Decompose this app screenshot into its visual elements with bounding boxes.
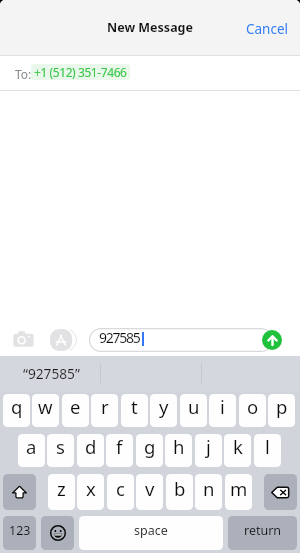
- staticText: o: [247, 394, 259, 419]
- button[interactable]: 123: [3, 516, 36, 550]
- button[interactable]: g: [136, 434, 163, 467]
- staticText: j: [206, 434, 211, 459]
- button[interactable]: w: [32, 394, 59, 427]
- button[interactable]: d: [77, 434, 104, 467]
- staticText: p: [276, 394, 288, 419]
- staticText: m: [230, 476, 248, 501]
- staticText: z: [57, 476, 66, 501]
- button[interactable]: Emoji: [41, 516, 74, 550]
- staticText: r: [101, 394, 109, 419]
- button[interactable]: t: [121, 394, 148, 427]
- staticText: f: [116, 434, 123, 459]
- staticText: e: [70, 394, 81, 419]
- button[interactable]: x: [77, 474, 104, 510]
- button[interactable]: z: [48, 474, 75, 510]
- staticText: k: [233, 434, 243, 459]
- button[interactable]: s: [47, 434, 74, 467]
- button[interactable]: u: [180, 394, 207, 427]
- button[interactable]: Shift: [3, 474, 36, 510]
- staticText: i: [220, 394, 225, 419]
- button[interactable]: i: [209, 394, 236, 427]
- button[interactable]: f: [106, 434, 133, 467]
- staticText: 927585: [99, 328, 140, 347]
- button[interactable]: Backspace: [264, 474, 297, 510]
- staticText: +1 (512) 351-7466: [34, 64, 127, 80]
- button[interactable]: h: [165, 434, 192, 467]
- staticText: y: [159, 394, 169, 419]
- staticText: s: [56, 434, 65, 459]
- staticText: h: [173, 434, 185, 459]
- button[interactable]: Send: [262, 330, 282, 350]
- staticText: l: [265, 434, 270, 459]
- button[interactable]: o: [239, 394, 266, 427]
- staticText: t: [131, 394, 138, 419]
- staticText: x: [86, 476, 96, 501]
- staticText: b: [174, 476, 186, 501]
- button[interactable]: l: [254, 434, 281, 467]
- button[interactable]: Apps: [50, 327, 76, 353]
- staticText: g: [144, 434, 156, 459]
- button[interactable]: y: [150, 394, 177, 427]
- staticText: d: [85, 434, 97, 459]
- button[interactable]: Cancel: [234, 14, 300, 42]
- staticText: “927585”: [23, 364, 80, 383]
- staticText: w: [38, 394, 53, 419]
- staticText: q: [11, 394, 23, 419]
- staticText: return: [244, 522, 282, 539]
- button[interactable]: j: [195, 434, 222, 467]
- button[interactable]: e: [62, 394, 89, 427]
- staticText: To:: [15, 66, 32, 82]
- button[interactable]: p: [268, 394, 295, 427]
- button[interactable]: n: [195, 474, 222, 510]
- button[interactable]: r: [91, 394, 118, 427]
- button[interactable]: return: [228, 516, 297, 550]
- button[interactable]: c: [107, 474, 134, 510]
- button[interactable]: q: [3, 394, 30, 427]
- staticText: n: [203, 476, 215, 501]
- staticText: Cancel: [246, 20, 289, 38]
- staticText: c: [116, 476, 125, 501]
- button[interactable]: a: [18, 434, 45, 467]
- button[interactable]: v: [136, 474, 163, 510]
- button[interactable]: b: [166, 474, 193, 510]
- button[interactable]: space: [79, 516, 223, 550]
- staticText: space: [134, 522, 168, 539]
- button[interactable]: 927585: [89, 328, 273, 352]
- button[interactable]: k: [224, 434, 251, 467]
- staticText: a: [26, 434, 37, 459]
- staticText: 123: [9, 522, 31, 539]
- staticText: v: [145, 476, 155, 501]
- button[interactable]: m: [225, 474, 252, 510]
- staticText: u: [188, 394, 200, 419]
- button[interactable]: Take photo: [11, 326, 36, 351]
- staticText: New Message: [107, 19, 193, 36]
